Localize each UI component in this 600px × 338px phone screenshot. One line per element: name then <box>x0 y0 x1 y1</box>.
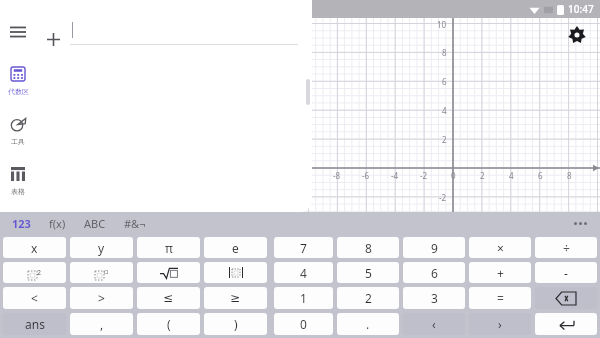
button[interactable]: ≥ <box>204 287 267 309</box>
staticText: > <box>98 290 105 306</box>
staticText: 0 <box>300 316 307 332</box>
staticText: 10 <box>437 19 447 30</box>
staticText: 5 <box>365 265 372 281</box>
staticText: 2 <box>442 134 447 145</box>
button[interactable]: #&¬ <box>122 214 148 233</box>
staticText: . <box>366 316 370 332</box>
button[interactable]: ) <box>204 313 267 335</box>
staticText: x <box>31 240 38 256</box>
staticText: ) <box>234 316 238 332</box>
staticText: 8 <box>567 170 572 181</box>
staticText: 8 <box>365 240 372 256</box>
button[interactable]: 9 <box>403 237 465 258</box>
staticText: < <box>31 290 38 306</box>
button[interactable]: ( <box>137 313 200 335</box>
staticText: 4 <box>509 170 514 181</box>
staticText: = <box>497 290 504 306</box>
staticText: π <box>165 240 173 256</box>
button[interactable]: x <box>3 237 66 258</box>
button[interactable]: , <box>70 313 133 335</box>
button[interactable]: ans <box>3 313 66 335</box>
staticText: ‑6 <box>362 170 370 181</box>
button[interactable]: y <box>70 237 133 258</box>
staticText: #&¬ <box>124 216 146 231</box>
button[interactable]: › <box>469 313 531 335</box>
staticText: 2 <box>37 268 42 278</box>
button[interactable]: 2 <box>3 262 66 283</box>
staticText: ‑8 <box>333 170 341 181</box>
staticText: 2 <box>480 170 485 181</box>
staticText: 6 <box>431 265 438 281</box>
button[interactable]: π <box>137 237 200 258</box>
button[interactable]: 工具 <box>0 114 36 146</box>
button[interactable]: ▫ <box>70 262 133 283</box>
button[interactable]: ‹ <box>403 313 465 335</box>
button[interactable]: ≤ <box>137 287 200 309</box>
button[interactable]: 5 <box>337 262 399 283</box>
button[interactable]: Settings <box>566 24 588 46</box>
staticText: , <box>100 316 104 332</box>
button[interactable]: = <box>469 287 531 309</box>
button[interactable]: - <box>535 262 597 283</box>
button[interactable]: 1 <box>274 287 333 309</box>
staticText: e <box>232 240 239 256</box>
button[interactable]: Add input row <box>36 22 70 56</box>
button[interactable]: 8 <box>337 237 399 258</box>
button[interactable]: 4 <box>274 262 333 283</box>
button[interactable]: > <box>70 287 133 309</box>
staticText: ans <box>25 316 45 332</box>
staticText: 123 <box>12 216 31 231</box>
button[interactable]: f(x) <box>47 214 68 233</box>
staticText: 6 <box>442 76 447 87</box>
staticText: × <box>497 240 504 256</box>
button[interactable]: More options <box>570 213 590 233</box>
staticText: f(x) <box>49 216 66 231</box>
staticText: 2 <box>365 290 372 306</box>
staticText: ≤ <box>163 291 174 305</box>
button[interactable]: + <box>469 262 531 283</box>
staticText: › <box>498 316 502 332</box>
staticText: 4 <box>442 105 447 116</box>
staticText: 0 <box>451 170 456 181</box>
button[interactable]: Enter <box>535 313 597 335</box>
button[interactable] <box>204 262 267 283</box>
button[interactable]: × <box>469 237 531 258</box>
staticText: 9 <box>431 240 438 256</box>
button[interactable]: 代数区 <box>0 64 36 96</box>
staticText: 表格 <box>11 187 25 196</box>
staticText: 代数区 <box>8 87 29 96</box>
staticText: ( <box>167 316 171 332</box>
staticText: ABC <box>84 216 106 231</box>
button[interactable]: 123 <box>10 214 33 233</box>
button[interactable]: Backspace <box>535 287 597 309</box>
staticText: 3 <box>431 290 438 306</box>
other: Backspace <box>556 292 576 305</box>
button[interactable]: e <box>204 237 267 258</box>
staticText: 10:47 <box>568 2 594 16</box>
button[interactable]: 7 <box>274 237 333 258</box>
staticText: 1 <box>300 290 307 306</box>
button[interactable]: . <box>337 313 399 335</box>
button[interactable]: 2 <box>337 287 399 309</box>
button[interactable] <box>137 262 200 283</box>
button[interactable]: 表格 <box>0 164 36 196</box>
button[interactable]: ÷ <box>535 237 597 258</box>
staticText: 8 <box>442 47 447 58</box>
other: Enter <box>558 319 574 330</box>
staticText: ÷ <box>563 240 570 256</box>
button[interactable]: Menu <box>0 18 36 46</box>
button[interactable]: 0 <box>274 313 333 335</box>
staticText: ‑4 <box>391 170 399 181</box>
button[interactable]: Resize panel <box>306 79 310 105</box>
staticText: + <box>497 265 504 281</box>
staticText: ‹ <box>432 316 436 332</box>
staticText: 4 <box>300 265 307 281</box>
staticText: y <box>98 240 105 256</box>
button[interactable]: 6 <box>403 262 465 283</box>
staticText: - <box>564 265 568 281</box>
button[interactable]: 3 <box>403 287 465 309</box>
staticText: ▫ <box>104 268 109 276</box>
staticText: ‑2 <box>439 192 447 203</box>
button[interactable]: ABC <box>82 214 108 233</box>
button[interactable]: < <box>3 287 66 309</box>
